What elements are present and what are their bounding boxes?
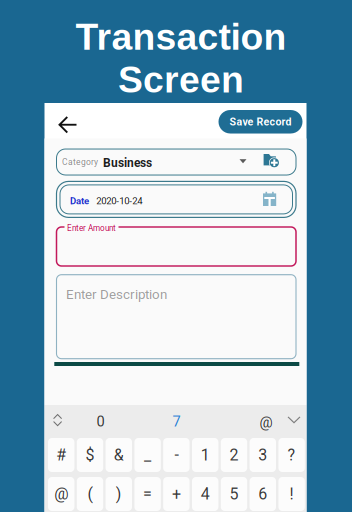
staticText: & (114, 446, 124, 464)
staticText: 3 (258, 446, 267, 464)
button[interactable]: = (134, 477, 161, 511)
button[interactable]: ? (278, 438, 305, 472)
button[interactable]: + (163, 477, 190, 511)
button[interactable]: 3 (250, 438, 276, 472)
staticText: Enter Amount (67, 223, 116, 233)
button[interactable]: & (106, 438, 132, 472)
staticText: Save Record (229, 115, 291, 128)
button[interactable]: 1 (192, 438, 218, 472)
button[interactable]: Save Record (218, 110, 302, 133)
staticText: = (143, 485, 152, 503)
staticText: ( (87, 485, 92, 503)
staticText: + (172, 485, 181, 503)
staticText: Category (62, 157, 98, 167)
staticText: # (56, 446, 66, 464)
staticText: ? (288, 446, 296, 464)
staticText: - (174, 446, 178, 464)
button[interactable]: ( (77, 477, 103, 511)
staticText: 7 (172, 413, 180, 430)
button[interactable]: Hide keyboard (283, 410, 305, 430)
staticText: 1 (201, 446, 210, 464)
button[interactable]: Category (56, 149, 296, 175)
button[interactable]: _ (134, 438, 161, 472)
button[interactable]: 5 (221, 477, 247, 511)
staticText: ) (116, 485, 122, 503)
button[interactable]: Date (56, 181, 296, 217)
staticText: Screen (118, 59, 244, 100)
button[interactable]: @ (48, 477, 74, 511)
button[interactable]: 2 (221, 438, 247, 472)
staticText: ! (290, 485, 294, 503)
button[interactable]: - (163, 438, 190, 472)
staticText: 2 (229, 446, 238, 464)
staticText: Business (103, 156, 152, 170)
staticText: 6 (258, 485, 267, 503)
button[interactable]: 4 (192, 477, 218, 511)
staticText: $ (85, 446, 94, 464)
staticText: @ (54, 485, 68, 503)
staticText: 4 (201, 485, 210, 503)
button[interactable]: ) (106, 477, 132, 511)
button[interactable]: Back (50, 110, 84, 140)
staticText: Date (70, 195, 89, 207)
staticText: Enter Description (66, 287, 167, 302)
button[interactable]: # (48, 438, 74, 472)
staticText: _ (144, 446, 151, 464)
staticText: @ (259, 414, 272, 431)
staticText: 0 (96, 413, 104, 430)
button[interactable]: 6 (250, 477, 276, 511)
staticText: 2020-10-24 (96, 195, 142, 207)
staticText: Transaction (75, 16, 286, 58)
button[interactable]: ! (278, 477, 305, 511)
staticText: 5 (229, 485, 238, 503)
button[interactable]: $ (77, 438, 103, 472)
